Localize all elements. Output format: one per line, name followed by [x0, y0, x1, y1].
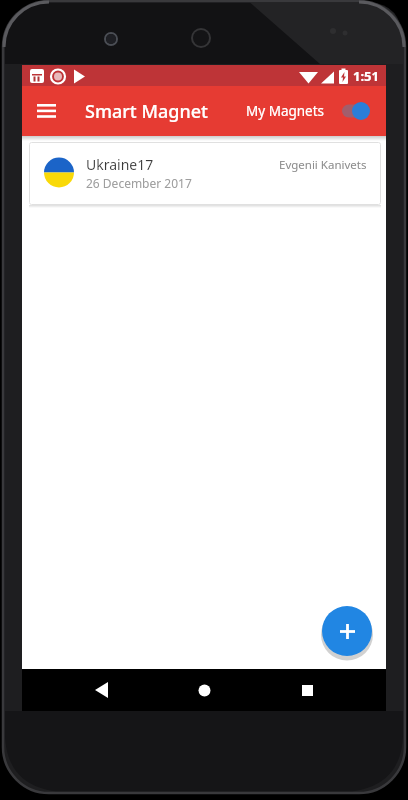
button[interactable]: My Magnets: [246, 86, 386, 136]
button[interactable]: [164, 669, 244, 711]
button[interactable]: [22, 86, 70, 136]
staticText: My Magnets: [246, 102, 325, 120]
button[interactable]: Ukraine17: [29, 142, 381, 205]
staticText: 1:51: [353, 67, 379, 85]
staticText: Smart Magnet: [85, 99, 208, 124]
button[interactable]: [322, 606, 372, 656]
button[interactable]: [267, 669, 347, 711]
staticText: Evgenii Kanivets: [279, 157, 367, 173]
staticText: 26 December 2017: [86, 175, 192, 191]
button[interactable]: [61, 669, 141, 711]
staticText: Ukraine17: [86, 155, 154, 174]
